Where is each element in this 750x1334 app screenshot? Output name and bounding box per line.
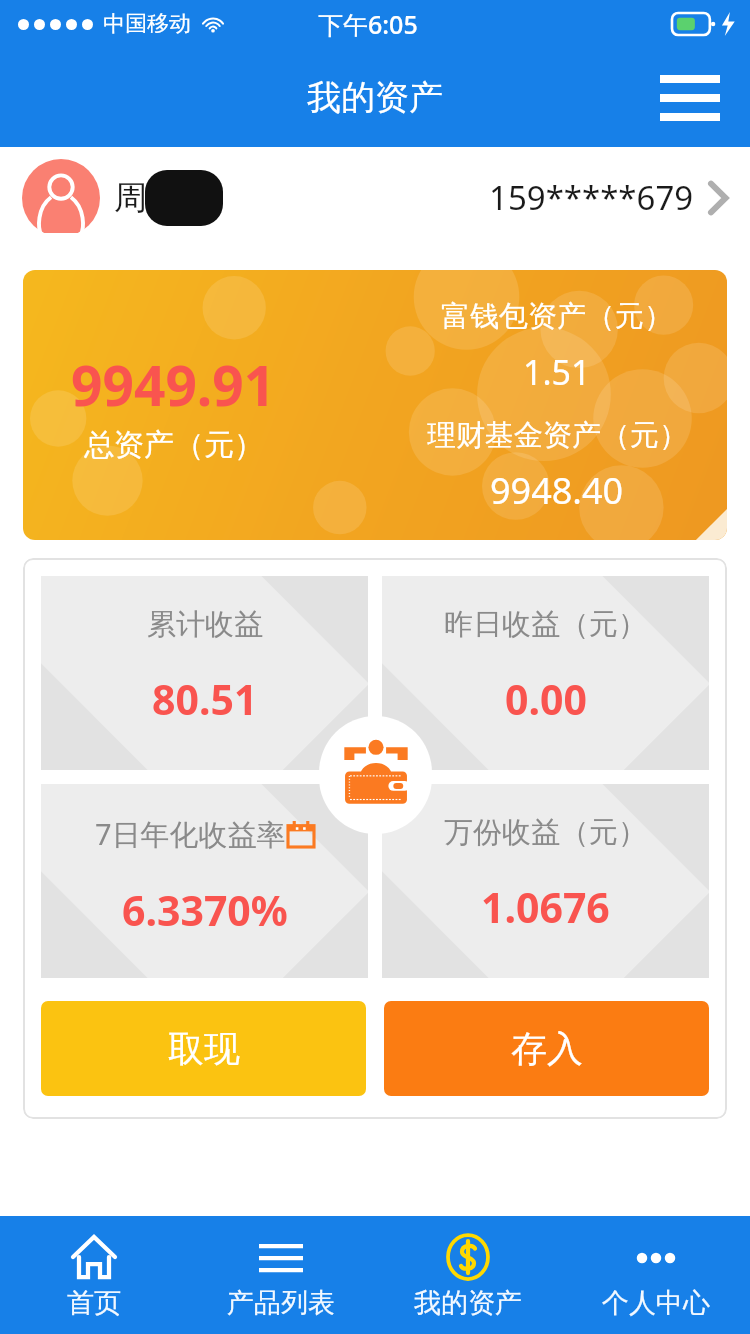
button[interactable]: 周 <box>0 147 750 248</box>
staticText: 取现 <box>168 1026 240 1071</box>
staticText: 1.0676 <box>481 879 610 935</box>
button[interactable]: 昨日收益（元） <box>382 576 709 770</box>
staticText: 7日年化收益率 <box>95 814 286 854</box>
other: My assets <box>443 1232 493 1282</box>
staticText: 80.51 <box>152 671 258 727</box>
staticText: 累计收益 <box>147 606 263 643</box>
staticText: 个人中心 <box>602 1286 710 1320</box>
staticText: 产品列表 <box>227 1286 335 1320</box>
staticText: 周 <box>114 177 147 219</box>
staticText: 富钱包资产（元） <box>441 298 673 335</box>
other: Personal center <box>631 1232 681 1282</box>
button[interactable]: 累计收益 <box>41 576 368 770</box>
staticText: 6.3370% <box>122 882 288 938</box>
button[interactable]: Menu <box>650 65 730 131</box>
button[interactable]: My assets <box>374 1216 562 1334</box>
staticText: 中国移动 <box>103 10 191 38</box>
staticText: 理财基金资产（元） <box>427 417 688 454</box>
button[interactable]: Home <box>0 1216 187 1334</box>
button[interactable]: 存入 <box>384 1001 709 1096</box>
staticText: 昨日收益（元） <box>444 606 647 643</box>
staticText: 首页 <box>67 1286 121 1320</box>
button[interactable]: Personal center <box>562 1216 750 1334</box>
staticText: 9949.91 <box>71 347 276 422</box>
staticText: 1.51 <box>523 349 591 395</box>
button[interactable]: 9949.91 <box>23 270 727 540</box>
staticText: 我的资产 <box>307 76 443 119</box>
button[interactable]: 取现 <box>41 1001 366 1096</box>
button[interactable]: Product list <box>187 1216 374 1334</box>
staticText: 0.00 <box>505 671 587 727</box>
staticText: 万份收益（元） <box>444 814 647 851</box>
staticText: 我的资产 <box>414 1286 522 1320</box>
button[interactable]: 万份收益（元） <box>382 784 709 978</box>
staticText: 总资产（元） <box>84 426 264 464</box>
other: Home <box>69 1232 119 1282</box>
button[interactable]: 7日年化收益率 <box>41 784 368 978</box>
other: Product list <box>256 1232 306 1282</box>
staticText: 9948.40 <box>490 466 624 515</box>
staticText: 159*****679 <box>489 175 694 220</box>
staticText: 下午6:05 <box>318 7 418 41</box>
staticText: 存入 <box>511 1026 583 1071</box>
